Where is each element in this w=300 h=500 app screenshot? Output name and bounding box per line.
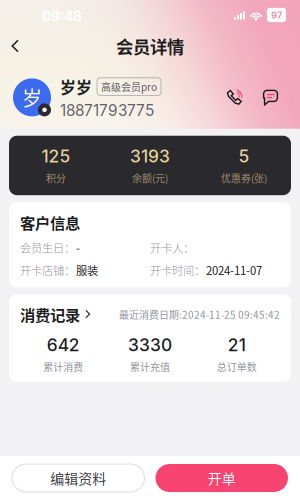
staticText: 高级会员pro	[101, 79, 157, 94]
staticText: 开卡人：	[150, 239, 194, 256]
staticText: 客户信息	[20, 211, 80, 233]
staticText: 09:48	[42, 8, 82, 25]
staticText: 编辑资料	[50, 468, 106, 488]
staticText: 2024-11-07	[206, 262, 262, 278]
staticText: 优惠券(张)	[221, 171, 267, 185]
staticText: 累计充值	[130, 359, 170, 374]
staticText: 余额(元)	[132, 171, 168, 185]
staticText: 岁岁	[60, 75, 92, 98]
staticText: 开单	[208, 468, 236, 488]
staticText: 会员详情	[116, 33, 184, 59]
staticText: 累计消费	[43, 359, 83, 374]
staticText: 消费记录	[20, 303, 80, 325]
staticText: 18871793775	[60, 101, 154, 120]
button[interactable]: 开单	[155, 464, 288, 492]
staticText: 开卡时间：	[150, 262, 205, 278]
button[interactable]: Call	[221, 85, 248, 110]
staticText: 21	[228, 334, 246, 355]
button[interactable]: 消费记录	[20, 303, 91, 325]
button[interactable]: Message	[257, 85, 284, 110]
button[interactable]: Back	[0, 31, 33, 60]
staticText: 开卡店铺：	[20, 262, 75, 278]
staticText: 岁	[22, 83, 42, 112]
staticText: 3193	[130, 146, 170, 167]
staticText: 最近消费日期:2024-11-25 09:45:42	[119, 307, 280, 322]
staticText: 会员生日：	[20, 239, 75, 256]
staticText: 642	[47, 334, 80, 355]
button[interactable]: 编辑资料	[12, 464, 144, 492]
staticText: 5	[238, 146, 249, 167]
staticText: 服装	[76, 262, 98, 278]
staticText: 积分	[46, 171, 66, 185]
staticText: 125	[41, 146, 70, 167]
staticText: 97	[271, 9, 282, 21]
staticText: 总订单数	[217, 359, 257, 374]
staticText: 3330	[128, 334, 172, 355]
staticText: -	[76, 239, 80, 256]
